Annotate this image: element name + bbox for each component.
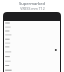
staticText: Supermarked bbox=[19, 1, 45, 6]
button[interactable] bbox=[4, 21, 60, 72]
button[interactable]: Phone preview bbox=[3, 12, 61, 72]
staticText: VRESS mm T12 bbox=[20, 6, 45, 11]
